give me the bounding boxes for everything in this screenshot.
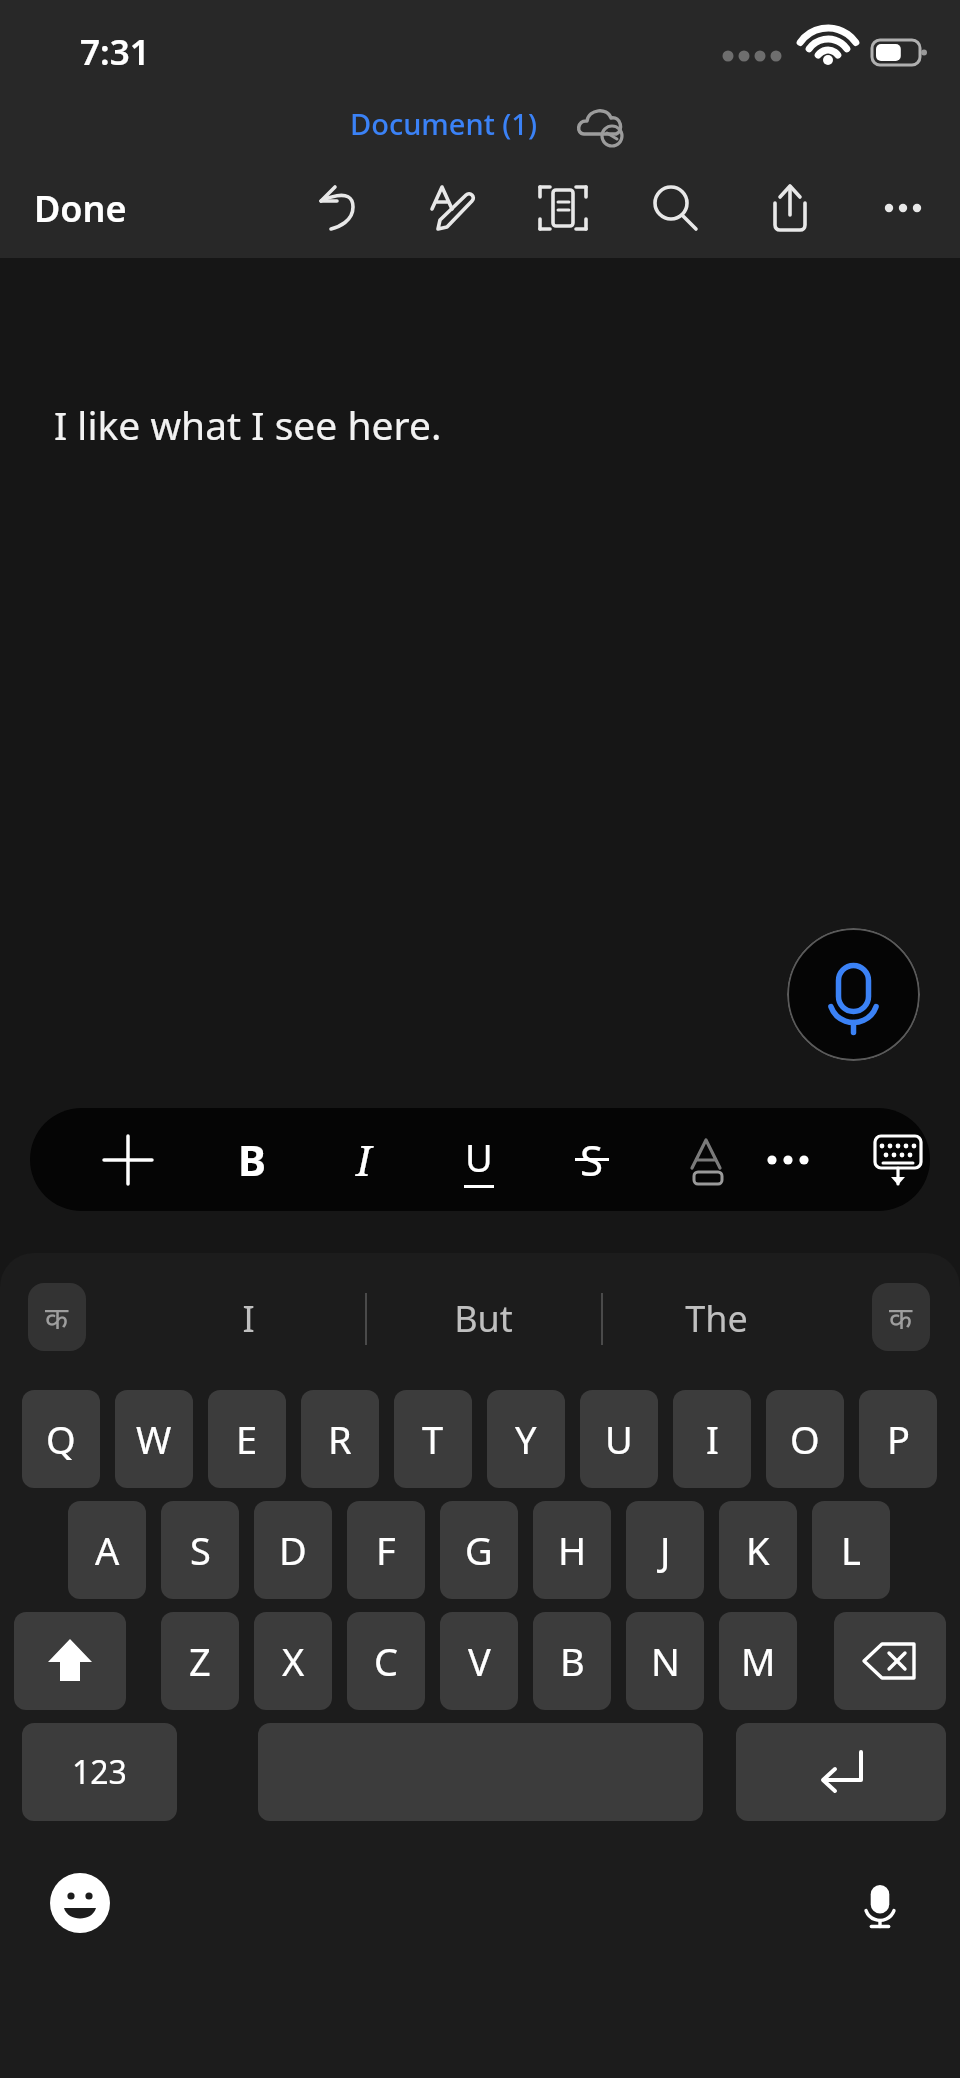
staticText: 7:31: [80, 28, 150, 76]
staticText: Document (1): [350, 104, 537, 143]
button[interactable]: Search: [637, 170, 713, 246]
button[interactable]: P: [859, 1390, 937, 1488]
button[interactable]: B: [533, 1612, 611, 1710]
staticText: The: [685, 1294, 748, 1343]
button[interactable]: Bold: [207, 1114, 297, 1205]
staticText: Y: [515, 1413, 537, 1465]
button[interactable]: Insert: [83, 1114, 173, 1205]
button[interactable]: Strikethrough: [547, 1114, 637, 1205]
staticText: X: [282, 1635, 305, 1687]
staticText: D: [279, 1524, 307, 1576]
staticText: W: [136, 1413, 172, 1465]
button[interactable]: W: [115, 1390, 193, 1488]
staticText: B: [238, 1131, 266, 1188]
button[interactable]: Y: [487, 1390, 565, 1488]
button[interactable]: Text color: [663, 1114, 753, 1205]
button[interactable]: Voice input: [830, 1853, 930, 1953]
staticText: V: [468, 1635, 491, 1687]
button[interactable]: Share: [752, 170, 828, 246]
staticText: G: [465, 1524, 493, 1576]
staticText: Z: [189, 1635, 211, 1687]
button[interactable]: T: [394, 1390, 472, 1488]
button[interactable]: More formatting: [743, 1114, 833, 1205]
staticText: P: [887, 1413, 910, 1465]
button[interactable]: Q: [22, 1390, 100, 1488]
staticText: I: [242, 1294, 255, 1343]
staticText: O: [790, 1413, 820, 1465]
button[interactable]: F: [347, 1501, 425, 1599]
staticText: I like what I see here.: [54, 398, 442, 451]
staticText: E: [236, 1413, 258, 1465]
staticText: U: [465, 1131, 493, 1183]
staticText: K: [746, 1524, 770, 1576]
button[interactable]: R: [301, 1390, 379, 1488]
button[interactable]: Underline: [434, 1114, 524, 1205]
button[interactable]: Change language: [28, 1283, 86, 1351]
staticText: Done: [34, 184, 127, 233]
staticText: R: [328, 1413, 352, 1465]
button[interactable]: Markup: [415, 170, 491, 246]
button[interactable]: V: [440, 1612, 518, 1710]
button[interactable]: U: [580, 1390, 658, 1488]
button[interactable]: S: [161, 1501, 239, 1599]
staticText: क: [889, 1297, 913, 1338]
button[interactable]: Undo: [302, 170, 378, 246]
staticText: I: [706, 1413, 719, 1465]
button[interactable]: Emoji: [30, 1853, 130, 1953]
staticText: S: [190, 1524, 211, 1576]
button[interactable]: G: [440, 1501, 518, 1599]
button[interactable]: J: [626, 1501, 704, 1599]
button[interactable]: Change language: [872, 1283, 930, 1351]
button[interactable]: Italic: [319, 1114, 409, 1205]
button[interactable]: Document (1): [350, 100, 537, 146]
button[interactable]: Backspace: [834, 1612, 946, 1710]
button[interactable]: 123: [22, 1723, 177, 1821]
button[interactable]: Hide keyboard: [853, 1114, 930, 1205]
staticText: I: [356, 1131, 372, 1188]
staticText: H: [558, 1524, 587, 1576]
button[interactable]: Dictate: [787, 928, 920, 1061]
button[interactable]: Z: [161, 1612, 239, 1710]
button[interactable]: Enter: [736, 1723, 946, 1821]
button[interactable]: E: [208, 1390, 286, 1488]
button[interactable]: More options: [865, 170, 941, 246]
staticText: J: [660, 1524, 671, 1576]
staticText: T: [422, 1413, 444, 1465]
other: Sync status: [578, 104, 624, 148]
button[interactable]: L: [812, 1501, 890, 1599]
staticText: क: [45, 1297, 69, 1338]
button[interactable]: K: [719, 1501, 797, 1599]
staticText: But: [454, 1294, 513, 1343]
button[interactable]: X: [254, 1612, 332, 1710]
button[interactable]: D: [254, 1501, 332, 1599]
button[interactable]: M: [719, 1612, 797, 1710]
staticText: S: [580, 1131, 604, 1188]
staticText: M: [741, 1635, 776, 1687]
staticText: 123: [72, 1750, 127, 1794]
staticText: B: [560, 1635, 585, 1687]
staticText: A: [95, 1524, 120, 1576]
button[interactable]: O: [766, 1390, 844, 1488]
button[interactable]: I: [138, 1275, 358, 1361]
button[interactable]: A: [68, 1501, 146, 1599]
button[interactable]: Done: [34, 184, 127, 233]
staticText: U: [605, 1413, 633, 1465]
staticText: F: [376, 1524, 396, 1576]
button[interactable]: Scan document: [525, 170, 601, 246]
staticText: N: [651, 1635, 680, 1687]
staticText: L: [841, 1524, 861, 1576]
button[interactable]: But: [373, 1275, 593, 1361]
button[interactable]: C: [347, 1612, 425, 1710]
staticText: C: [374, 1635, 399, 1687]
staticText: Q: [46, 1413, 76, 1465]
button[interactable]: N: [626, 1612, 704, 1710]
button[interactable]: H: [533, 1501, 611, 1599]
button[interactable]: I: [673, 1390, 751, 1488]
button[interactable]: The: [606, 1275, 826, 1361]
button[interactable]: Shift: [14, 1612, 126, 1710]
